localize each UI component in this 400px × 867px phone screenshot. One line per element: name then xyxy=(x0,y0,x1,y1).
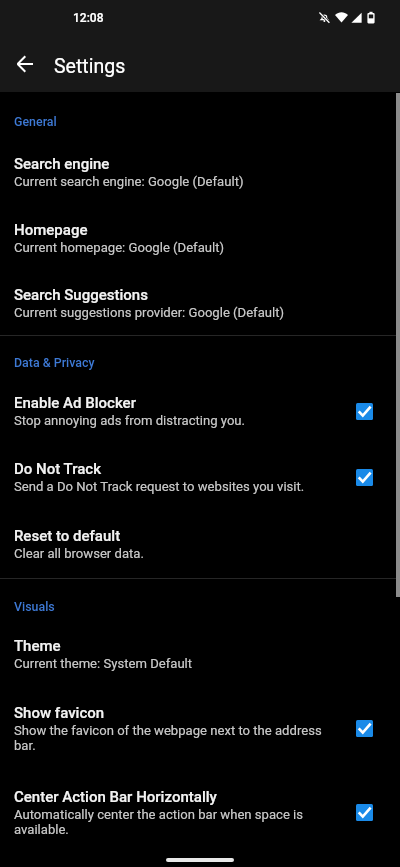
staticText: Current suggestions provider: Google (De… xyxy=(14,305,285,320)
staticText: Stop annoying ads from distracting you. xyxy=(14,413,246,428)
button[interactable]: Theme xyxy=(0,622,400,686)
button[interactable]: Enable Ad Blocker xyxy=(0,378,400,444)
button[interactable]: Search engine xyxy=(0,139,400,205)
staticText: Theme xyxy=(14,637,61,655)
button[interactable]: Show favicon, enabled xyxy=(356,720,373,737)
button[interactable]: Enable Ad Blocker, enabled xyxy=(356,403,373,420)
staticText: Reset to default xyxy=(14,527,121,545)
staticText: Show the favicon of the webpage next to … xyxy=(14,723,346,753)
button[interactable]: Do Not Track xyxy=(0,444,400,510)
button[interactable]: Search Suggestions xyxy=(0,271,400,335)
staticText: Homepage xyxy=(14,221,88,239)
staticText: Data & Privacy xyxy=(14,355,95,370)
staticText: Do Not Track xyxy=(14,460,102,478)
staticText: Show favicon xyxy=(14,704,105,722)
button[interactable]: Do Not Track, enabled xyxy=(356,469,373,486)
staticText: Clear all browser data. xyxy=(14,546,144,561)
staticText: Current search engine: Google (Default) xyxy=(14,174,244,189)
button[interactable]: Center Action Bar Horizontally, enabled xyxy=(356,804,373,821)
button[interactable]: Homepage xyxy=(0,205,400,271)
staticText: Current theme: System Default xyxy=(14,656,193,671)
button[interactable]: Center Action Bar Horizontally xyxy=(0,770,400,854)
button[interactable]: Show favicon xyxy=(0,686,400,770)
staticText: Enable Ad Blocker xyxy=(14,394,136,412)
staticText: Send a Do Not Track request to websites … xyxy=(14,479,305,494)
button[interactable]: Reset to default xyxy=(0,510,400,578)
staticText: General xyxy=(14,114,57,129)
staticText: Center Action Bar Horizontally xyxy=(14,788,217,806)
staticText: Search engine xyxy=(14,155,110,173)
staticText: Automatically center the action bar when… xyxy=(14,807,346,837)
staticText: 12:08 xyxy=(73,11,104,25)
button[interactable]: Back xyxy=(0,40,49,89)
staticText: Current homepage: Google (Default) xyxy=(14,240,225,255)
staticText: Visuals xyxy=(14,599,55,614)
staticText: Settings xyxy=(54,55,126,78)
staticText: Search Suggestions xyxy=(14,286,148,304)
